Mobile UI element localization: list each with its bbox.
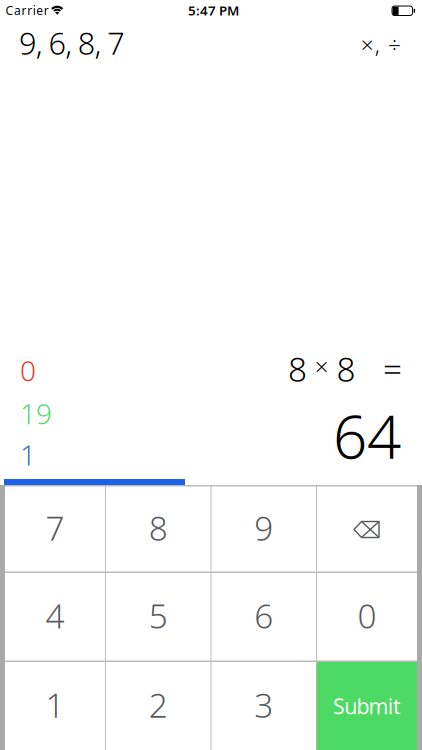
button[interactable]: 1	[5, 662, 105, 750]
staticText: 64	[333, 396, 401, 475]
staticText: 5	[149, 593, 168, 638]
button[interactable]: 3	[211, 662, 316, 750]
button[interactable]: 2	[106, 662, 210, 750]
button[interactable]: 9	[211, 486, 316, 571]
button[interactable]: 8	[106, 486, 210, 571]
staticText: Carrier	[5, 2, 49, 18]
staticText: 4	[45, 593, 64, 638]
button[interactable]: 6	[211, 573, 316, 660]
staticText: Submit	[333, 692, 401, 720]
staticText: 9	[254, 506, 273, 550]
staticText: 6	[254, 593, 273, 638]
staticText: 8	[149, 506, 168, 550]
button[interactable]: Submit	[317, 662, 417, 750]
staticText: 19	[20, 395, 52, 432]
button[interactable]: 7	[5, 486, 105, 571]
staticText: 9, 6, 8, 7	[19, 22, 125, 63]
staticText: =	[383, 347, 402, 391]
staticText: 0	[357, 593, 376, 638]
staticText: 1	[20, 436, 36, 473]
staticText: 0	[20, 352, 36, 389]
button[interactable]: 0	[317, 573, 417, 660]
button[interactable]: Delete	[317, 486, 417, 571]
staticText: 1	[45, 683, 64, 727]
staticText: 2	[149, 683, 168, 727]
staticText: ×, ÷	[361, 29, 401, 59]
staticText: 3	[254, 683, 273, 727]
staticText: 8	[336, 347, 355, 391]
staticText: ×	[315, 350, 329, 382]
button[interactable]: 4	[5, 573, 105, 660]
staticText: 5:47 PM	[188, 1, 239, 19]
staticText: 7	[45, 506, 64, 550]
button[interactable]: 5	[106, 573, 210, 660]
staticText: 8	[288, 347, 307, 391]
